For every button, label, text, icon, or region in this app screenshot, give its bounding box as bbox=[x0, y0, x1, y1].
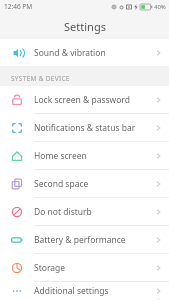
staticText: Battery & performance bbox=[34, 234, 126, 246]
staticText: Additional settings bbox=[34, 285, 109, 297]
staticText: Do not disturb bbox=[34, 206, 92, 218]
button[interactable]: Sound & vibration bbox=[0, 39, 169, 66]
button[interactable]: Notifications & status bar bbox=[0, 114, 169, 141]
staticText: Home screen bbox=[34, 150, 87, 162]
button[interactable]: Home screen bbox=[0, 142, 169, 169]
button[interactable]: Second space bbox=[0, 170, 169, 197]
staticText: 12:46 PM bbox=[4, 2, 33, 11]
staticText: Storage bbox=[34, 262, 66, 274]
staticText: Notifications & status bar bbox=[34, 122, 136, 134]
button[interactable]: Lock screen & password bbox=[0, 86, 169, 113]
button[interactable]: Storage bbox=[0, 254, 169, 281]
staticText: Sound & vibration bbox=[34, 47, 106, 59]
staticText: 40% bbox=[154, 3, 166, 11]
staticText: Second space bbox=[34, 178, 89, 190]
staticText: Settings bbox=[64, 19, 106, 34]
button[interactable]: Battery & performance bbox=[0, 226, 169, 253]
button[interactable]: Do not disturb bbox=[0, 198, 169, 225]
staticText: Lock screen & password bbox=[34, 94, 130, 106]
button[interactable]: Additional settings bbox=[0, 282, 169, 300]
staticText: SYSTEM & DEVICE bbox=[11, 74, 70, 83]
